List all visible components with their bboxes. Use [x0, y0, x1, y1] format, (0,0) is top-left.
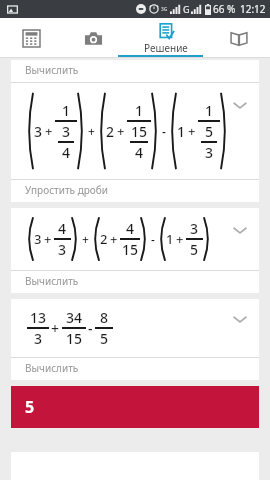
staticText: 1 [177, 122, 186, 141]
staticText: Упростить дроби [25, 183, 108, 197]
staticText: 3 [34, 230, 42, 248]
staticText: + [82, 231, 89, 247]
staticText: Вычислить [25, 63, 79, 77]
button[interactable]: 5 [11, 386, 259, 428]
staticText: 3G [161, 6, 168, 13]
staticText: 15 [66, 329, 83, 348]
staticText: 34 [66, 308, 83, 327]
staticText: 2 [100, 230, 108, 248]
staticText: Решение [144, 41, 188, 55]
staticText: 15 [131, 122, 148, 141]
staticText: 1 [62, 101, 71, 120]
button[interactable]: Reference book [208, 18, 270, 58]
staticText: - [88, 319, 93, 338]
staticText: 1 [205, 101, 214, 120]
staticText: Вычислить [25, 361, 79, 375]
staticText: 15 [122, 240, 139, 259]
other: Expand [233, 101, 247, 110]
staticText: + [45, 122, 53, 140]
staticText: 3 [205, 143, 214, 162]
staticText: 12:12 [240, 2, 266, 16]
staticText: 5 [25, 396, 35, 418]
staticText: 5 [100, 329, 109, 348]
staticText: - [151, 231, 155, 247]
staticText: + [88, 123, 95, 139]
other: Expand [233, 315, 247, 324]
staticText: 1 [166, 230, 174, 248]
staticText: + [188, 122, 196, 140]
staticText: + [176, 230, 184, 248]
staticText: 4 [126, 219, 135, 238]
staticText: 4 [135, 143, 144, 162]
button[interactable]: Решение [124, 18, 208, 58]
staticText: 66 % [213, 2, 236, 16]
staticText: 5 [205, 122, 214, 141]
button[interactable]: Camera [62, 18, 124, 58]
button[interactable]: Вычислить [11, 60, 259, 202]
other: Expand [233, 226, 247, 235]
staticText: + [44, 230, 52, 248]
staticText: 2 [106, 122, 115, 141]
staticText: 3 [190, 219, 199, 238]
staticText: 5 [190, 240, 199, 259]
staticText: 3 [62, 122, 71, 141]
staticText: + [110, 230, 118, 248]
staticText: + [117, 122, 125, 140]
staticText: 3 [34, 122, 43, 141]
staticText: Вычислить [25, 274, 79, 288]
staticText: 4 [58, 219, 67, 238]
button[interactable]: 13 [11, 299, 259, 380]
staticText: + [51, 319, 60, 338]
button[interactable]: Calculator [0, 18, 62, 58]
staticText: 1 [135, 101, 144, 120]
staticText: - [162, 123, 166, 139]
staticText: G [183, 3, 190, 15]
staticText: 3 [34, 329, 43, 348]
staticText: 8 [100, 308, 109, 327]
staticText: 13 [30, 308, 47, 327]
button[interactable]: 3 [11, 208, 259, 293]
staticText: 3 [58, 240, 67, 259]
staticText: 4 [62, 143, 71, 162]
